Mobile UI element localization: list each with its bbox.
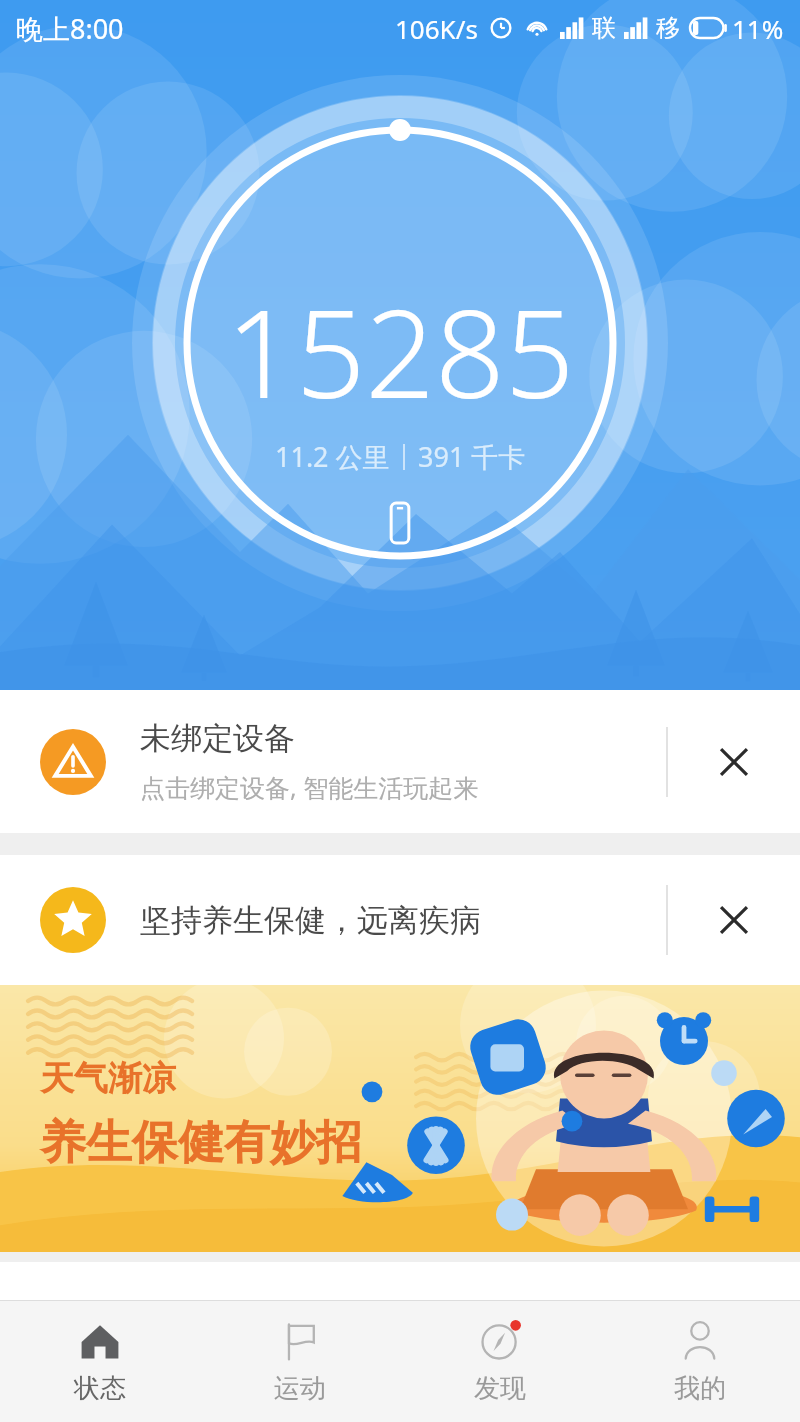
staticText: 晚上8:00 <box>16 10 124 47</box>
button[interactable]: 我的 <box>600 1301 800 1422</box>
button[interactable]: 关闭 <box>668 855 800 985</box>
button[interactable]: 关闭 <box>668 690 800 833</box>
staticText: 联 <box>592 13 616 43</box>
staticText: 天气渐凉 <box>40 1057 176 1100</box>
staticText: 点击绑定设备, 智能生活玩起来 <box>140 770 479 804</box>
staticText: 11% <box>732 11 784 46</box>
staticText: 移 <box>656 13 680 43</box>
button[interactable]: 坚持养生保健，远离疾病 <box>0 855 800 985</box>
staticText: 发现 <box>474 1372 526 1405</box>
staticText: 养生保健有妙招 <box>40 1114 362 1172</box>
staticText: 坚持养生保健，远离疾病 <box>140 901 481 940</box>
staticText: 我的 <box>674 1372 726 1405</box>
staticText: 106K/s <box>395 11 478 46</box>
staticText: 15285 <box>226 268 575 434</box>
button[interactable]: 状态 <box>0 1301 200 1422</box>
staticText: 未绑定设备 <box>140 719 295 758</box>
staticText: 状态 <box>74 1372 126 1405</box>
button[interactable]: 发现 <box>400 1301 600 1422</box>
staticText: 391 千卡 <box>418 438 526 475</box>
staticText: 11.2 公里 <box>275 438 390 475</box>
button[interactable]: 天气渐凉 <box>0 985 800 1252</box>
staticText: 运动 <box>274 1372 326 1405</box>
button[interactable]: 运动 <box>200 1301 400 1422</box>
button[interactable]: 未绑定设备 <box>0 690 800 833</box>
